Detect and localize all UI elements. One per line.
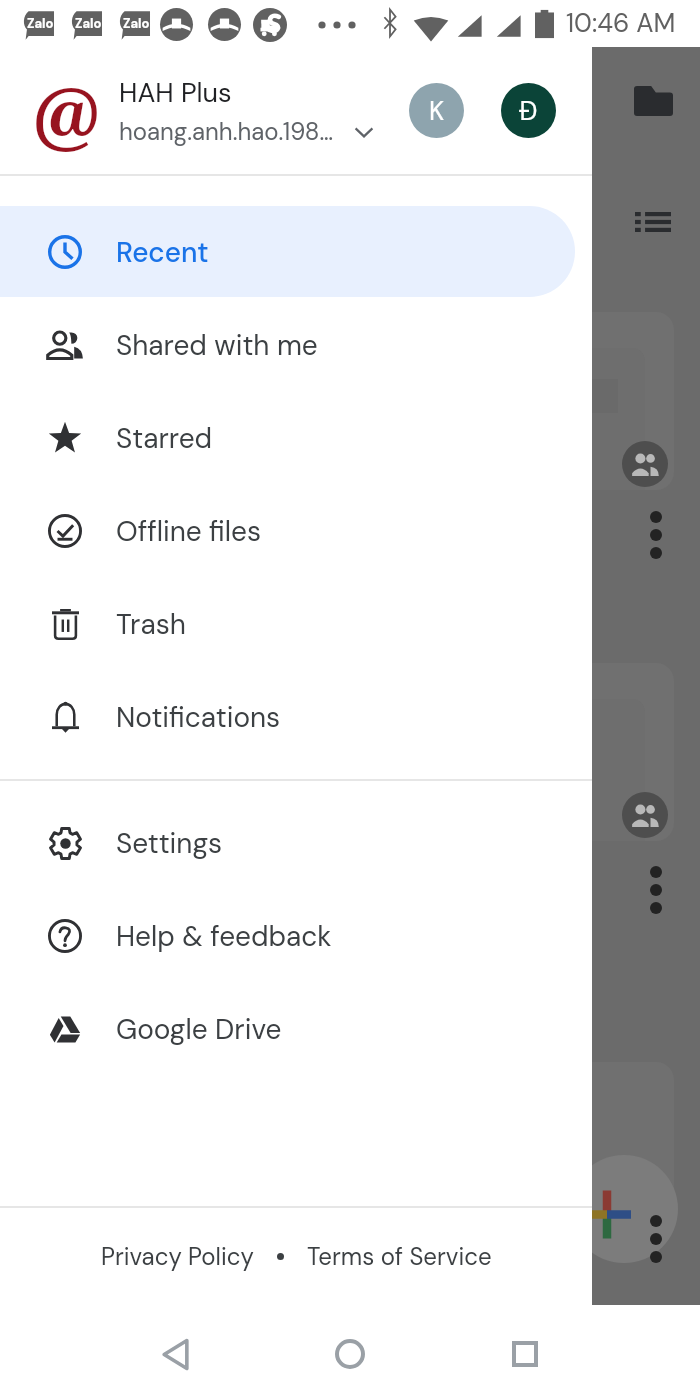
button[interactable]: Expand account list	[350, 118, 378, 146]
button[interactable]: Trash	[0, 577, 592, 670]
button[interactable]: @	[0, 47, 592, 174]
button[interactable]: Back	[140, 1319, 210, 1389]
staticText: Terms of Service	[307, 1241, 492, 1272]
staticText: Help & feedback	[116, 918, 332, 954]
staticText: 10:46 AM	[566, 6, 676, 40]
staticText: Recent	[116, 234, 209, 270]
staticText: Trash	[116, 606, 186, 642]
button[interactable]: Google Drive	[0, 982, 592, 1075]
staticText: @	[32, 62, 101, 163]
staticText: Google Drive	[116, 1011, 282, 1047]
button[interactable]: Home	[315, 1319, 385, 1389]
button[interactable]: Terms of Service	[301, 1233, 498, 1280]
staticText: Zalo	[123, 15, 150, 32]
button[interactable]: Offline files	[0, 484, 592, 577]
button[interactable]: Notifications	[0, 670, 592, 763]
staticText: hoang.anh.hao.198…	[119, 116, 334, 147]
button[interactable]: Recent	[0, 206, 575, 297]
button[interactable]: Recent apps	[490, 1319, 560, 1389]
staticText: Zalo	[27, 15, 54, 32]
staticText: Offline files	[116, 513, 262, 549]
staticText: Settings	[116, 825, 223, 861]
staticText: Starred	[116, 420, 213, 456]
staticText: Đ	[519, 94, 538, 128]
button[interactable]: Settings	[0, 796, 592, 889]
button[interactable]: Đ	[501, 83, 556, 138]
staticText: Notifications	[116, 699, 281, 735]
staticText: Shared with me	[116, 327, 318, 363]
button[interactable]: Starred	[0, 391, 592, 484]
staticText: K	[429, 94, 445, 128]
button[interactable]: K	[409, 83, 464, 138]
staticText: Zalo	[75, 15, 102, 32]
staticText: HAH Plus	[119, 75, 232, 110]
button[interactable]: Privacy Policy	[95, 1233, 260, 1280]
button[interactable]: Help & feedback	[0, 889, 592, 982]
button[interactable]: Shared with me	[0, 298, 592, 391]
staticText: Privacy Policy	[101, 1241, 254, 1272]
